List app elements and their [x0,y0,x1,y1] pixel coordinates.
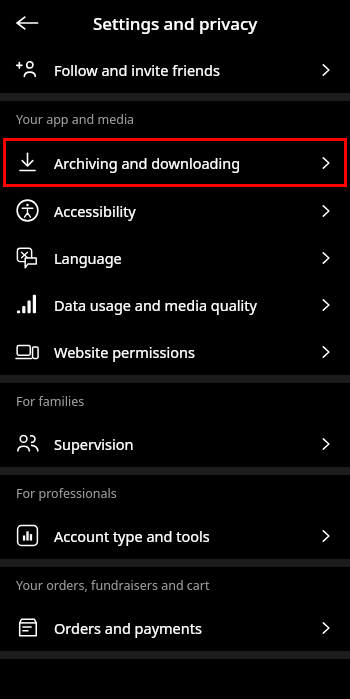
staticText: Your app and media [16,111,135,128]
staticText: Website permissions [54,342,318,362]
staticText: For families [16,393,85,410]
button[interactable]: Data usage and media quality [0,281,350,328]
staticText: Your orders, fundraisers and cart [16,577,210,594]
staticText: Orders and payments [54,618,318,638]
staticText: Accessibility [54,201,318,221]
staticText: Settings and privacy [93,12,258,35]
button[interactable]: Follow and invite friends [0,46,350,93]
staticText: Follow and invite friends [54,60,318,80]
staticText: Language [54,248,318,268]
button[interactable]: Accessibility [0,187,350,234]
button[interactable]: Back [8,4,46,42]
button[interactable]: Language [0,234,350,281]
staticText: Archiving and downloading [54,153,318,173]
button[interactable]: Website permissions [0,328,350,375]
button[interactable]: Account type and tools [0,512,350,559]
button[interactable]: Orders and payments [0,604,350,651]
staticText: For professionals [16,485,117,502]
staticText: Data usage and media quality [54,295,318,315]
staticText: Account type and tools [54,526,318,546]
button[interactable]: Supervision [0,420,350,467]
staticText: Supervision [54,434,318,454]
